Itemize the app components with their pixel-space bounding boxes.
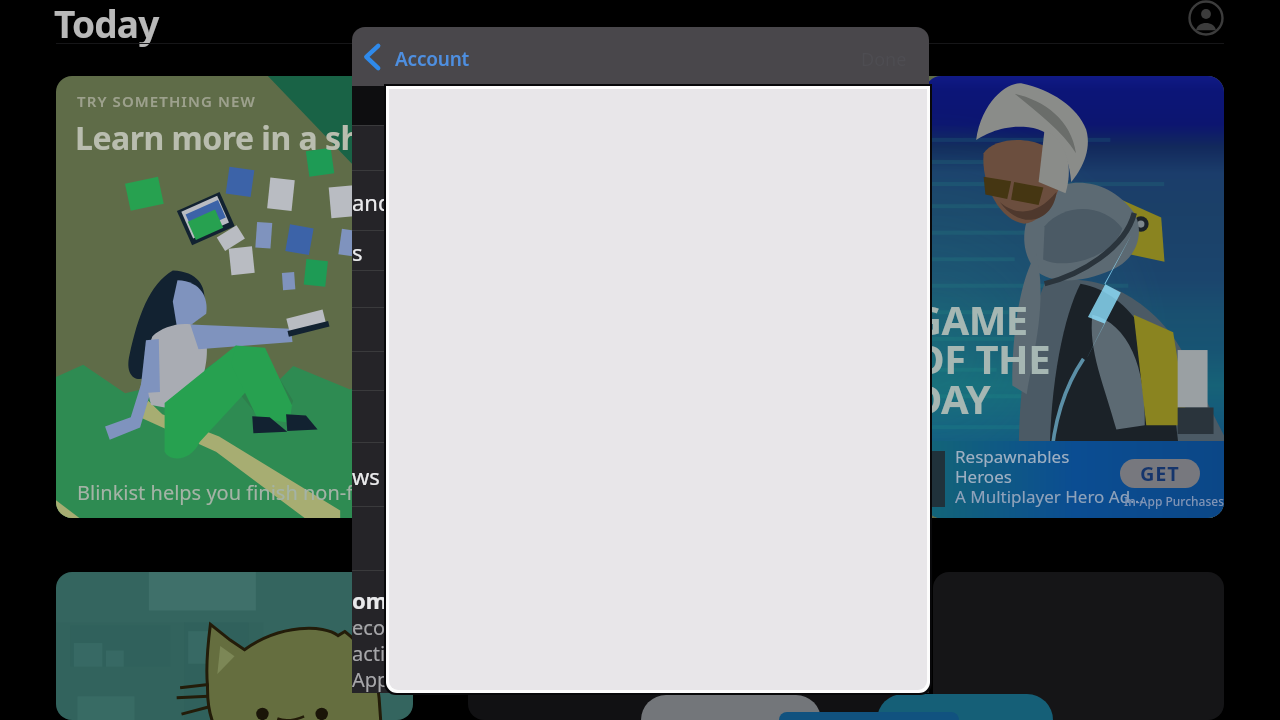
staticText: Respawnables: [955, 445, 1070, 468]
button[interactable]: omm: [352, 570, 929, 626]
staticText: Account: [395, 46, 470, 72]
button[interactable]: GET: [1120, 459, 1200, 488]
staticText: TRY SOMETHING NEW: [77, 91, 256, 111]
staticText: GAME OF THE DAY: [925, 292, 1051, 426]
button[interactable]: [352, 390, 929, 442]
button[interactable]: ws: [352, 442, 929, 506]
staticText: ecom activi App S: [352, 614, 406, 693]
button[interactable]: [933, 572, 1224, 720]
button[interactable]: [56, 572, 413, 720]
button[interactable]: GAME OF THE DAY: [925, 76, 1224, 518]
staticText: s: [352, 237, 363, 267]
button[interactable]: Account: [1188, 0, 1224, 36]
staticText: ws: [352, 461, 380, 491]
staticText: Blinkist helps you finish non-fiction bo…: [77, 479, 467, 506]
staticText: omm: [352, 585, 409, 615]
button[interactable]: [352, 351, 929, 390]
staticText: Today: [54, 0, 159, 48]
staticText: A Multiplayer Hero Ad...: [955, 485, 1144, 508]
button[interactable]: [352, 270, 929, 307]
staticText: GET: [1140, 460, 1180, 487]
button[interactable]: [352, 626, 929, 693]
staticText: and p: [352, 187, 411, 217]
staticText: Learn more in a short time: [75, 116, 488, 160]
staticText: In-App Purchases: [1124, 493, 1224, 509]
staticText: Heroes: [955, 465, 1012, 488]
button[interactable]: and p: [352, 170, 929, 230]
button[interactable]: [352, 506, 929, 570]
button[interactable]: [468, 572, 908, 720]
button[interactable]: [352, 307, 929, 351]
button[interactable]: s: [352, 230, 929, 270]
button[interactable]: Back: [356, 35, 398, 77]
button[interactable]: [352, 125, 929, 170]
button[interactable]: TRY SOMETHING NEW: [56, 76, 1224, 518]
